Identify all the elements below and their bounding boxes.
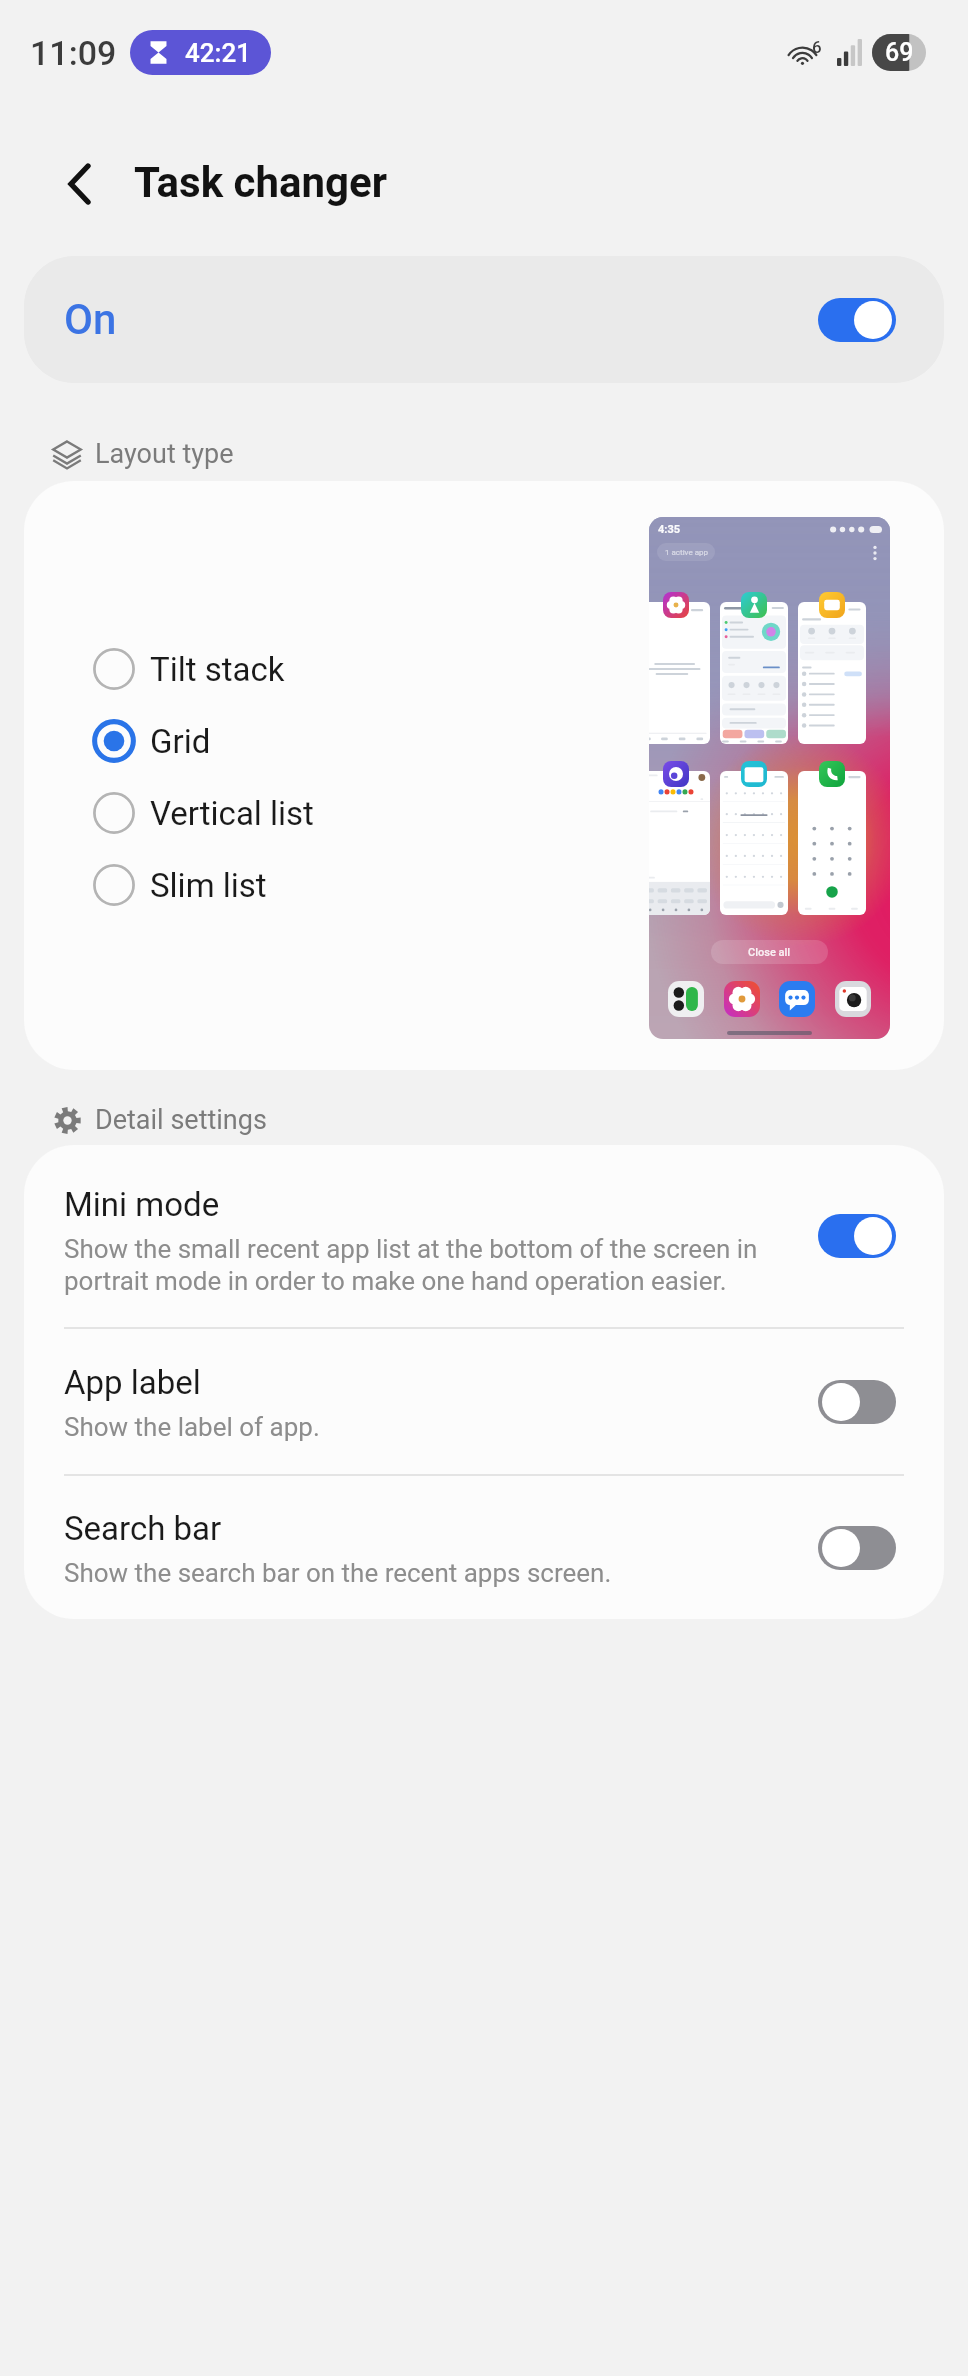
button[interactable]: Vertical list [92,777,314,849]
staticText: 69 [885,38,914,67]
staticText: Tilt stack [150,650,285,689]
staticText: 6 [812,37,822,57]
button[interactable] [818,1214,896,1258]
staticText: 11:09 [30,33,117,73]
staticText: Task changer [134,158,388,207]
button[interactable]: Grid [92,705,211,777]
button[interactable] [798,602,866,744]
staticText: Mini mode [64,1185,220,1224]
button[interactable]: Search bar [24,1476,944,1619]
staticText: Search bar [64,1509,222,1548]
button[interactable]: App label [24,1329,944,1474]
staticText: Show the small recent app list at the bo… [64,1233,804,1297]
button[interactable] [818,298,896,342]
staticText: App label [64,1363,201,1402]
staticText: 42:21 [185,38,252,68]
staticText: Vertical list [150,794,314,833]
staticText: On [64,295,117,344]
button[interactable] [798,771,866,915]
button[interactable]: Tilt stack [92,633,285,705]
button[interactable] [649,771,710,915]
staticText: 4:35 [658,523,681,536]
staticText: Show the label of app. [64,1411,320,1443]
button[interactable]: Mini mode [24,1145,944,1327]
button[interactable] [720,771,788,915]
button[interactable] [818,1526,896,1570]
staticText: Layout type [95,438,234,470]
button[interactable]: 1 active app [657,543,715,561]
staticText: Show the search bar on the recent apps s… [64,1557,612,1589]
button[interactable]: On [24,256,944,383]
button[interactable] [649,602,710,744]
button[interactable]: Back [43,145,115,217]
staticText: Grid [150,722,211,761]
button[interactable]: Close all [711,940,828,964]
button[interactable] [818,1380,896,1424]
button[interactable] [720,602,788,744]
staticText: 1 active app [665,548,708,557]
staticText: Detail settings [95,1104,267,1136]
staticText: Close all [748,946,791,959]
staticText: Slim list [150,866,267,905]
button[interactable]: Slim list [92,849,267,921]
